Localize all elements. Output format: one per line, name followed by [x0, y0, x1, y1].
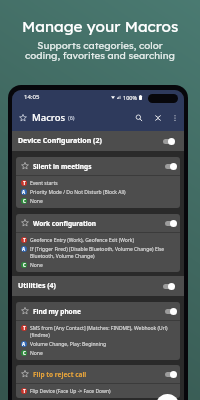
staticText: Flip Device (Face Up -> Face Down): [30, 388, 111, 395]
staticText: Flip to reject call: [33, 370, 87, 379]
staticText: None: [30, 198, 43, 205]
button[interactable]: Collapse all: [148, 108, 167, 127]
staticText: A: [22, 246, 26, 252]
staticText: Supports categories, color coding, favor…: [25, 39, 175, 61]
staticText: A: [22, 341, 26, 347]
staticText: A: [22, 189, 26, 195]
staticText: C: [23, 198, 26, 204]
button[interactable]: Add macro: [156, 394, 179, 400]
button[interactable]: Silent in meetings: [16, 157, 180, 208]
staticText: C: [23, 350, 26, 356]
button[interactable]: Search: [129, 108, 148, 127]
staticText: Work configuration: [33, 219, 96, 228]
button[interactable]: Utilities (4): [12, 276, 184, 296]
staticText: None: [30, 262, 43, 269]
button[interactable]: Enable: [165, 308, 176, 315]
staticText: Volume Change, Play: Beginning: [30, 341, 107, 348]
staticText: C: [23, 262, 26, 268]
button[interactable]: Flip to reject call: [16, 365, 180, 398]
staticText: Manage your Macros: [22, 17, 179, 36]
staticText: Utilities (4): [18, 281, 56, 291]
button[interactable]: Enable: [165, 163, 176, 170]
staticText: (6): [68, 114, 75, 121]
button[interactable]: Enable: [165, 371, 176, 378]
staticText: T: [23, 388, 26, 394]
button[interactable]: Enable: [163, 283, 174, 290]
staticText: Macros: [32, 111, 66, 124]
staticText: Device Configuration (2): [18, 136, 102, 146]
staticText: None: [30, 350, 43, 357]
button[interactable]: Work configuration: [16, 214, 180, 272]
staticText: Find my phone: [33, 307, 81, 316]
staticText: (findme): [30, 332, 50, 339]
staticText: T: [23, 180, 26, 186]
button[interactable]: Enable: [165, 220, 176, 227]
staticText: 14:05: [24, 93, 40, 101]
staticText: 100%: [123, 94, 138, 101]
button[interactable]: Find my phone: [16, 302, 180, 360]
button[interactable]: Device Configuration (2): [12, 131, 184, 151]
button[interactable]: More options: [167, 108, 182, 127]
button[interactable]: Enable: [163, 138, 174, 145]
staticText: T: [23, 237, 26, 243]
staticText: Priority Mode / Do Not Disturb (Block Al…: [30, 189, 126, 196]
staticText: T: [23, 325, 26, 331]
staticText: If (Trigger Fired) (Disable Bluetooth, V…: [30, 246, 180, 253]
staticText: Event starts: [30, 180, 58, 187]
staticText: Silent in meetings: [33, 162, 92, 171]
staticText: SMS from [Any Contact] (Matches: FINDME)…: [30, 325, 168, 332]
staticText: Geofence Entry (Work), Geofence Exit (Wo…: [30, 237, 134, 244]
staticText: Bluetooth, Volume Change): [30, 253, 95, 260]
